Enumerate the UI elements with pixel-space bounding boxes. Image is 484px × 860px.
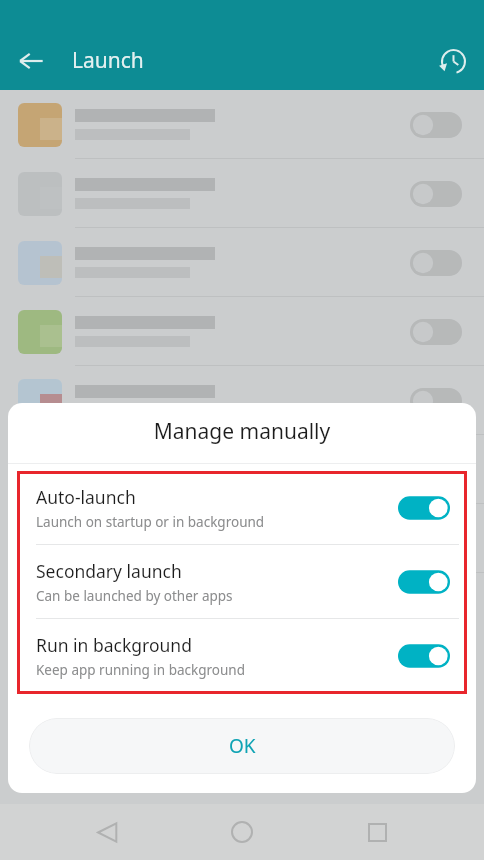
staticText: Secondary launch (36, 559, 182, 583)
button[interactable]: Auto-launch (17, 471, 467, 544)
staticText: OK (229, 733, 256, 759)
staticText: Run in background (36, 633, 192, 657)
button[interactable]: Secondary launch (17, 545, 467, 618)
button[interactable]: Recents (349, 804, 405, 860)
staticText: Auto-launch (36, 485, 136, 509)
button[interactable]: History (422, 30, 484, 92)
staticText: Launch on startup or in background (36, 513, 265, 531)
staticText: Manage manually (8, 417, 476, 446)
button[interactable]: Home (214, 804, 270, 860)
staticText: Keep app running in background (36, 661, 245, 679)
button[interactable]: OK (29, 718, 455, 774)
button[interactable]: Run in background (17, 619, 467, 692)
button[interactable]: Back (0, 30, 62, 92)
staticText: Launch (72, 46, 144, 75)
staticText: Can be launched by other apps (36, 587, 233, 605)
button[interactable]: Back (79, 804, 135, 860)
